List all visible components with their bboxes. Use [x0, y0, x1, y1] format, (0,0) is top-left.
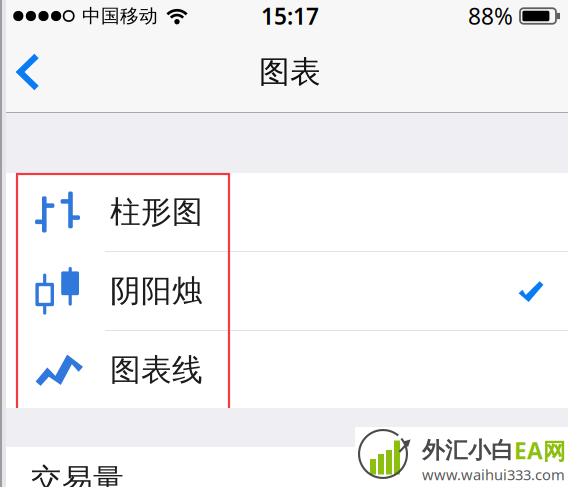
staticText: 15:17	[261, 1, 319, 31]
button[interactable]: 阴阳烛	[6, 252, 568, 330]
staticText: EA网	[514, 435, 566, 466]
staticText: 图表线	[110, 351, 203, 389]
button[interactable]: Back	[6, 32, 59, 112]
staticText: 柱形图	[110, 193, 203, 231]
staticText: 交易量	[31, 461, 124, 487]
staticText: 阴阳烛	[110, 272, 203, 310]
staticText: 外汇小白	[422, 437, 514, 464]
staticText: 88%	[468, 1, 513, 31]
staticText: www.waihui333.com	[422, 465, 565, 484]
button[interactable]: 柱形图	[6, 173, 568, 251]
staticText: 中国移动	[82, 4, 158, 27]
staticText: 图表	[259, 53, 321, 91]
button[interactable]: 图表线	[6, 331, 568, 409]
